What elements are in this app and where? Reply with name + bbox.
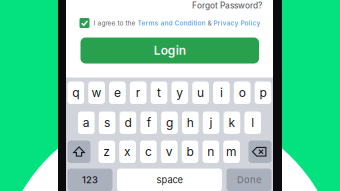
button[interactable]: x (119, 140, 136, 163)
staticText: h (187, 115, 194, 130)
button[interactable]: o (234, 81, 250, 104)
button[interactable]: p (255, 81, 271, 104)
button[interactable]: b (182, 140, 198, 163)
staticText: w (92, 85, 102, 100)
button[interactable]: j (203, 111, 219, 134)
staticText: k (228, 115, 235, 130)
staticText: s (104, 115, 110, 130)
button[interactable]: Forgot Password? (172, 0, 262, 11)
button[interactable]: f (140, 111, 157, 134)
button[interactable]: Privacy Policy (213, 19, 260, 27)
staticText: space (156, 174, 182, 185)
button[interactable]: l (244, 111, 261, 134)
staticText: j (210, 115, 213, 130)
button[interactable]: r (130, 81, 146, 104)
staticText: f (147, 115, 151, 130)
staticText: a (83, 115, 90, 130)
staticText: 123 (82, 174, 98, 185)
staticText: o (239, 85, 246, 100)
button[interactable]: u (192, 81, 209, 104)
staticText: n (207, 144, 214, 159)
staticText: r (136, 85, 141, 100)
staticText: e (114, 85, 121, 100)
staticText: c (145, 144, 152, 159)
staticText: t (157, 85, 161, 100)
button[interactable]: Shift (67, 140, 90, 163)
button[interactable]: Done (226, 168, 271, 191)
button[interactable]: w (88, 81, 105, 104)
button[interactable]: z (98, 140, 115, 163)
staticText: i (220, 85, 223, 100)
button[interactable]: 123 (67, 168, 112, 191)
button[interactable]: e (109, 81, 126, 104)
button[interactable]: c (140, 140, 157, 163)
staticText: z (103, 144, 110, 159)
staticText: l (251, 115, 254, 130)
button[interactable]: d (120, 111, 136, 134)
staticText: & (205, 19, 213, 27)
button[interactable]: i (213, 81, 230, 104)
button[interactable]: h (182, 111, 199, 134)
button[interactable]: t (151, 81, 167, 104)
staticText: Login (154, 43, 186, 58)
staticText: Privacy Policy (213, 19, 260, 27)
button[interactable]: n (202, 140, 219, 163)
staticText: Terms and Condition (137, 19, 205, 27)
staticText: I agree to the (89, 19, 137, 27)
staticText: b (186, 144, 193, 159)
staticText: p (259, 85, 266, 100)
staticText: g (166, 115, 173, 130)
staticText: m (226, 144, 237, 159)
button[interactable]: Login (80, 37, 259, 63)
staticText: Forgot Password? (192, 0, 262, 10)
button[interactable]: a (78, 111, 95, 134)
button[interactable]: k (224, 111, 240, 134)
button[interactable]: v (161, 140, 177, 163)
button[interactable]: s (99, 111, 115, 134)
button[interactable]: g (161, 111, 178, 134)
staticText: x (124, 144, 131, 159)
button[interactable]: space (117, 168, 222, 191)
staticText: y (176, 85, 183, 100)
button[interactable]: Agree to terms and conditions (79, 18, 89, 28)
button[interactable]: q (67, 81, 84, 104)
staticText: v (166, 144, 173, 159)
staticText: d (124, 115, 131, 130)
staticText: Done (237, 174, 261, 185)
button[interactable]: Terms and Condition (137, 19, 205, 27)
button[interactable]: y (171, 81, 188, 104)
button[interactable]: Delete (248, 140, 271, 163)
button[interactable]: m (223, 140, 240, 163)
staticText: u (197, 85, 204, 100)
staticText: q (72, 85, 79, 100)
